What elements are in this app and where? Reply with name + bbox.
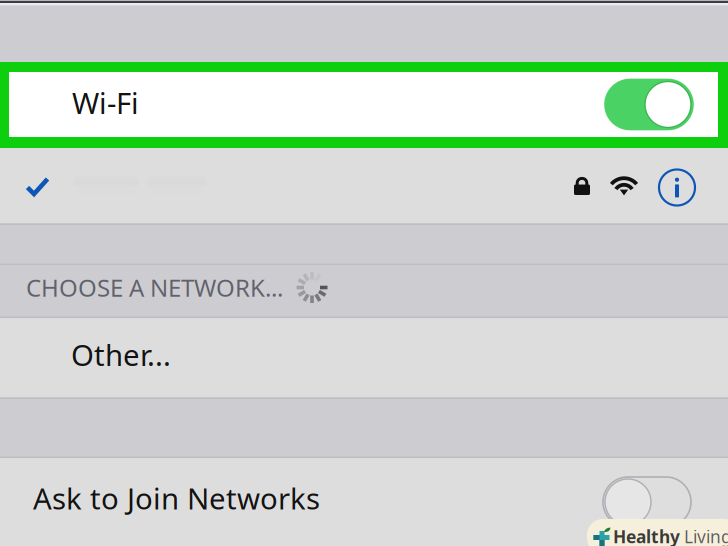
staticText: Healthy [613,525,680,546]
button[interactable]: Wi-Fi [9,72,718,137]
staticText: Other... [71,335,171,374]
button[interactable]: Other... [0,318,728,397]
staticText: Wi-Fi [72,83,139,122]
staticText: CHOOSE A NETWORK... [26,272,283,303]
button[interactable]: Ask to Join Networks [0,458,728,546]
staticText: Ask to Join Networks [33,478,320,517]
button[interactable] [0,148,728,223]
staticText: Living [684,525,728,546]
